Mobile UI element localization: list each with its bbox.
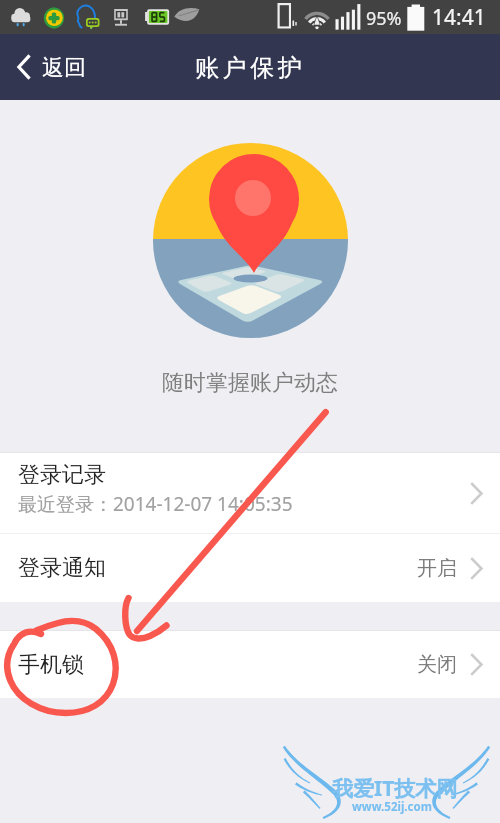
staticText: 手机锁: [18, 651, 417, 679]
staticText: 随时掌握账户动态: [162, 369, 338, 397]
staticText: 登录通知: [18, 554, 417, 582]
button[interactable]: 返回: [0, 34, 98, 100]
staticText: 95%: [366, 6, 402, 31]
staticText: www.52ij.com: [352, 799, 432, 815]
staticText: 登录记录: [18, 461, 106, 489]
staticText: 我爱IT技术网: [332, 774, 458, 803]
staticText: 14:41: [432, 3, 486, 32]
staticText: 返回: [42, 54, 86, 82]
button[interactable]: 登录记录: [0, 453, 500, 533]
staticText: 开启: [417, 556, 457, 581]
button[interactable]: 手机锁: [0, 631, 500, 698]
staticText: 关闭: [417, 652, 457, 677]
staticText: 账户保护: [195, 53, 306, 83]
staticText: 最近登录：2014-12-07 14:05:35: [18, 491, 293, 517]
button[interactable]: 登录通知: [0, 534, 500, 602]
